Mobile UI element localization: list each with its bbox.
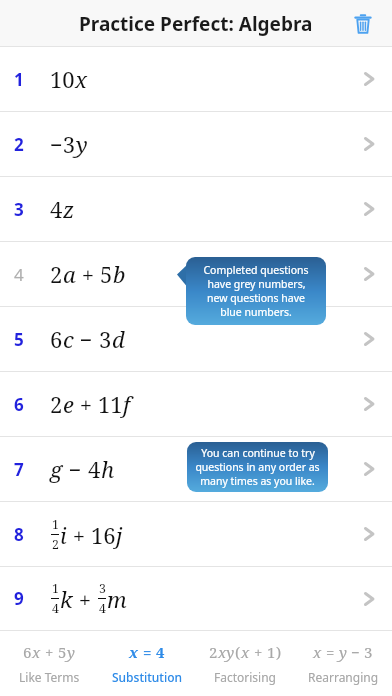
staticText: xy [218, 642, 235, 662]
staticText: j [116, 520, 123, 550]
button[interactable]: 4 [0, 242, 392, 306]
staticText: blue numbers. [220, 305, 292, 319]
staticText: = [139, 642, 156, 662]
staticText: 4 [88, 454, 101, 484]
staticText: x [32, 642, 41, 662]
staticText: 10 [50, 64, 75, 94]
staticText: y [67, 642, 75, 662]
staticText: 3 [99, 580, 106, 597]
staticText: h [101, 454, 115, 484]
staticText: Practice Perfect: Algebra [79, 11, 313, 37]
staticText: Completed questions [203, 263, 309, 277]
staticText: k [60, 584, 73, 614]
staticText: You can continue to try [201, 446, 315, 460]
staticText: −3 [50, 129, 76, 159]
staticText: y [339, 642, 347, 662]
staticText: 3 [364, 642, 373, 662]
staticText: 4 [99, 600, 106, 617]
staticText: 4 [156, 642, 165, 662]
staticText: + [67, 520, 91, 550]
staticText: g [50, 454, 63, 484]
staticText: have grey numbers, [207, 277, 306, 291]
staticText: 8 [14, 523, 24, 546]
staticText: 3 [14, 198, 24, 221]
staticText: + [76, 259, 100, 289]
staticText: 6 [50, 324, 63, 354]
button[interactable]: 2 [196, 631, 294, 696]
staticText: 6 [14, 393, 24, 416]
button[interactable]: 9 [0, 567, 392, 630]
staticText: questions in any order as [195, 460, 320, 474]
staticText: 5 [14, 328, 24, 351]
staticText: many times as you like. [200, 474, 315, 488]
staticText: − [347, 642, 364, 662]
staticText: d [112, 324, 125, 354]
button[interactable]: 3 [0, 177, 392, 241]
staticText: + [73, 584, 97, 614]
staticText: 5 [100, 259, 113, 289]
button[interactable]: 5 [0, 307, 392, 371]
staticText: − [63, 454, 88, 484]
staticText: x [313, 642, 322, 662]
staticText: + [74, 389, 98, 419]
staticText: ( [235, 642, 241, 662]
staticText: 1 [14, 68, 24, 91]
button[interactable]: 7 [0, 437, 392, 501]
button[interactable]: x [98, 631, 196, 696]
staticText: Factorising [214, 669, 277, 685]
staticText: c [63, 324, 74, 354]
staticText: a [63, 259, 76, 289]
staticText: x [75, 64, 88, 94]
staticText: 16 [91, 520, 116, 550]
button[interactable]: 1 [0, 47, 392, 111]
staticText: i [60, 520, 67, 550]
staticText: − [74, 324, 99, 354]
button[interactable]: 8 [0, 502, 392, 566]
button[interactable]: Delete progress [348, 9, 378, 39]
staticText: 1 [52, 516, 59, 533]
staticText: 11 [98, 389, 123, 419]
staticText: 7 [14, 458, 24, 481]
staticText: 5 [58, 642, 67, 662]
staticText: 2 [50, 389, 63, 419]
staticText: y [76, 129, 88, 159]
staticText: 3 [99, 324, 112, 354]
button[interactable]: 6 [0, 631, 98, 696]
staticText: 2 [209, 642, 218, 662]
button[interactable]: 6 [0, 372, 392, 436]
staticText: 4 [14, 263, 24, 286]
staticText: 4 [50, 194, 63, 224]
staticText: ) [276, 642, 282, 662]
staticText: 1 [267, 642, 276, 662]
staticText: 2 [14, 133, 24, 156]
staticText: e [63, 389, 74, 419]
staticText: Rearranging [308, 669, 379, 685]
staticText: = [322, 642, 339, 662]
staticText: x [129, 642, 139, 662]
staticText: m [107, 584, 127, 614]
button[interactable]: x [294, 631, 392, 696]
staticText: b [113, 259, 126, 289]
staticText: 2 [50, 259, 63, 289]
staticText: 6 [23, 642, 32, 662]
staticText: x [241, 642, 250, 662]
staticText: Like Terms [19, 669, 80, 685]
staticText: 9 [14, 587, 24, 610]
staticText: Substitution [112, 669, 183, 685]
button[interactable]: 2 [0, 112, 392, 176]
staticText: 1 [52, 580, 59, 597]
staticText: z [63, 194, 75, 224]
staticText: + [250, 642, 267, 662]
staticText: 2 [52, 536, 59, 553]
staticText: f [123, 389, 130, 419]
staticText: new questions have [207, 291, 305, 305]
staticText: + [41, 642, 58, 662]
staticText: 4 [52, 600, 59, 617]
